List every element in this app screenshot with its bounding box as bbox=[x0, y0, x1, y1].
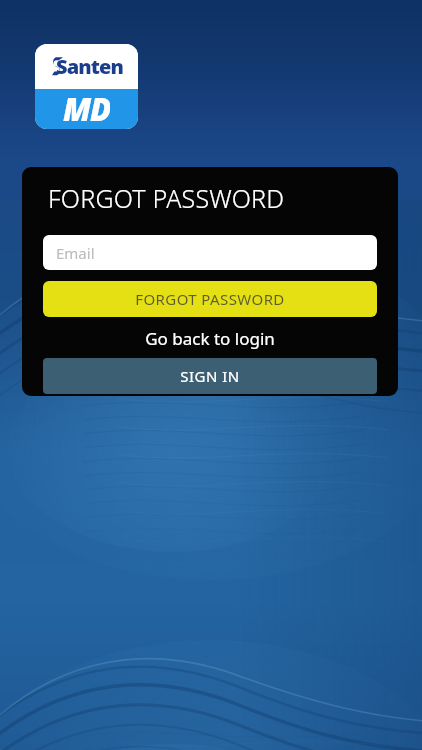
staticText: Santen bbox=[56, 53, 123, 80]
button[interactable]: Email bbox=[43, 235, 377, 270]
staticText: MD bbox=[63, 88, 110, 128]
button[interactable]: FORGOT PASSWORD bbox=[43, 281, 377, 317]
staticText: FORGOT PASSWORD bbox=[48, 181, 285, 215]
staticText: Go back to login bbox=[145, 327, 275, 349]
button[interactable]: SIGN IN bbox=[43, 358, 377, 394]
staticText: FORGOT PASSWORD bbox=[135, 289, 285, 309]
staticText: Email bbox=[56, 243, 95, 263]
staticText: SIGN IN bbox=[180, 366, 240, 386]
button[interactable]: Santen bbox=[35, 44, 138, 129]
button[interactable]: Go back to login bbox=[22, 327, 398, 349]
